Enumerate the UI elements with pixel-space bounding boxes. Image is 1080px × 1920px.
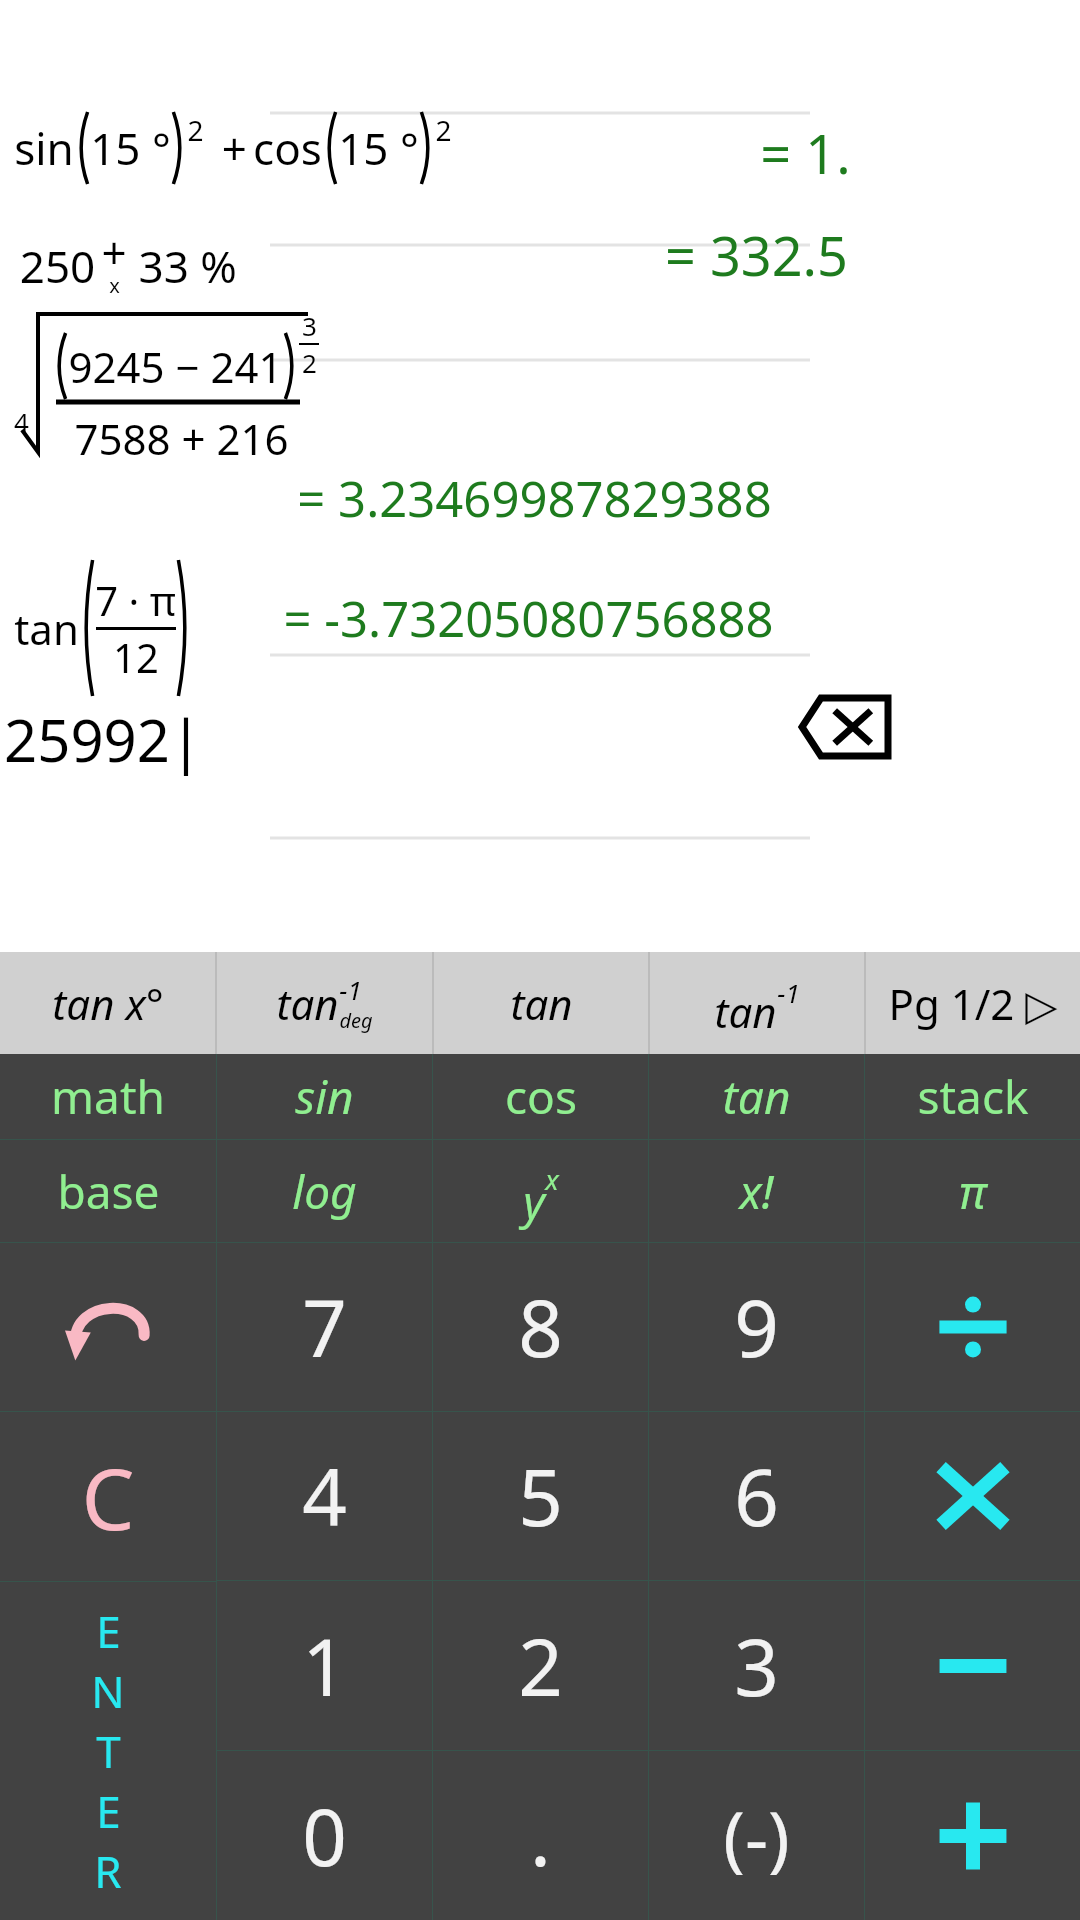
staticText: math [51,1065,165,1128]
button[interactable]: 9 [649,1243,864,1411]
staticText: y [523,1170,545,1233]
staticText: base [57,1160,160,1223]
staticText: sin [14,118,74,178]
button[interactable] [865,1581,1080,1750]
button[interactable] [865,1751,1080,1920]
staticText: 9 [734,1274,779,1380]
staticText: -1 [777,975,800,1010]
staticText: 2 [518,1613,563,1719]
staticText: = -3.73205080756888 [283,585,774,652]
staticText: 7588 + 216 [74,410,289,467]
button[interactable] [865,1243,1080,1411]
button[interactable]: E [0,1582,216,1920]
staticText: x [109,272,120,299]
staticText: 2 [187,111,204,149]
staticText: = 332.5 [665,218,848,292]
button[interactable]: tan [650,952,864,1054]
button[interactable]: tan [217,952,432,1054]
button[interactable]: Undo [0,1243,216,1411]
button[interactable]: π [865,1140,1080,1242]
staticText: tan [510,975,573,1032]
button[interactable]: 2 [433,1581,648,1750]
staticText: E [96,1601,121,1661]
staticText: 12 [113,630,159,684]
staticText: cos [505,1065,577,1128]
staticText: tan x° [52,975,164,1032]
staticText: 3 [302,308,317,343]
staticText: 3 [734,1613,779,1719]
button[interactable]: sin [217,1054,432,1139]
staticText: 4 [14,404,29,439]
staticText: = 3.23469987829388 [297,465,772,532]
staticText: sin [295,1065,354,1128]
staticText: + [101,222,127,282]
staticText: = 1. [760,116,851,190]
staticText: tan [714,983,777,1040]
staticText: 5 [518,1443,563,1549]
button[interactable]: cos [433,1054,648,1139]
staticText: 6 [734,1443,779,1549]
staticText: 7 · π [95,573,176,627]
button[interactable]: 0 [217,1751,432,1920]
staticText: Pg 1/2 ▷ [888,975,1058,1032]
staticText: 2 [302,345,317,380]
button[interactable]: y [433,1140,648,1242]
button[interactable]: 7 [217,1243,432,1411]
button[interactable]: base [0,1140,216,1242]
button[interactable]: Backspace [795,692,895,762]
staticText: π [959,1160,986,1223]
staticText: C [81,1440,135,1554]
staticText: E [96,1781,121,1841]
staticText: x! [739,1160,774,1223]
button[interactable] [865,1412,1080,1580]
staticText: . [530,1783,551,1889]
staticText: + [204,118,253,178]
staticText: 25992| [4,700,202,779]
button[interactable]: 5 [433,1412,648,1580]
staticText: 2 [435,111,452,149]
staticText: 7 [302,1274,347,1380]
staticText: tan [14,600,79,657]
staticText: cos [253,118,322,178]
staticText: 1 [302,1613,347,1719]
staticText: 15 ° [90,118,171,178]
staticText: x [545,1160,559,1198]
staticText: stack [917,1065,1029,1128]
button[interactable]: (-) [649,1751,864,1920]
staticText: 4 [302,1443,347,1549]
button[interactable]: 6 [649,1412,864,1580]
button[interactable]: Pg 1/2 ▷ [866,952,1080,1054]
button[interactable]: 3 [649,1581,864,1750]
button[interactable]: stack [865,1054,1080,1139]
staticText: 250 [14,236,101,296]
staticText: 33 % [127,236,237,296]
staticText: log [292,1160,357,1223]
staticText: tan [722,1065,791,1128]
staticText: deg [339,1007,373,1034]
staticText: 15 ° [338,118,419,178]
button[interactable]: 4 [217,1412,432,1580]
staticText: (-) [723,1787,790,1885]
button[interactable]: C [0,1412,216,1581]
button[interactable]: tan x° [0,952,215,1054]
button[interactable]: x! [649,1140,864,1242]
button[interactable]: math [0,1054,216,1139]
button[interactable]: . [433,1751,648,1920]
button[interactable]: tan [434,952,648,1054]
staticText: T [96,1721,121,1781]
staticText: -1 [339,972,362,1007]
button[interactable]: log [217,1140,432,1242]
button[interactable]: 1 [217,1581,432,1750]
staticText: 0 [302,1783,347,1889]
staticText: tan [276,975,339,1032]
staticText: N [91,1661,125,1721]
staticText: 9245 − 241 [68,338,283,395]
button[interactable]: tan [649,1054,864,1139]
staticText: R [94,1841,122,1901]
staticText: 8 [518,1274,563,1380]
button[interactable]: 8 [433,1243,648,1411]
